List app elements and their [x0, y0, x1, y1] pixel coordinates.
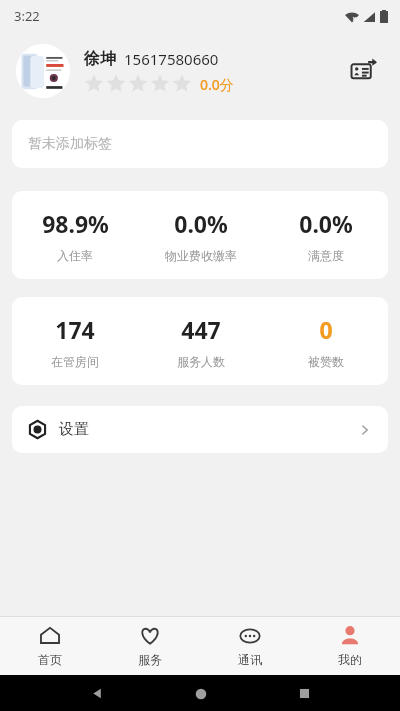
button[interactable]: 服务 [100, 617, 200, 675]
staticText: 服务人数 [177, 354, 225, 369]
staticText: 0.0分 [200, 75, 234, 94]
button[interactable]: 暂未添加标签 [12, 120, 388, 168]
staticText: 通讯 [238, 652, 262, 667]
staticText: 15617580660 [124, 49, 219, 69]
button[interactable]: 98.9% [12, 191, 138, 279]
staticText: 0 [319, 314, 333, 345]
staticText: 入住率 [57, 248, 93, 263]
staticText: 满意度 [308, 248, 344, 263]
button[interactable]: 0.0% [138, 191, 263, 279]
button[interactable]: 徐坤 [0, 32, 400, 110]
button[interactable]: 通讯 [200, 617, 300, 675]
staticText: 设置 [59, 420, 358, 439]
staticText: 0.0% [174, 208, 228, 239]
button[interactable]: 设置 [12, 406, 388, 453]
staticText: 我的 [338, 652, 362, 667]
button[interactable]: 447 [138, 297, 263, 385]
button[interactable]: 0 [263, 297, 388, 385]
staticText: 首页 [38, 652, 62, 667]
staticText: 0.0% [299, 208, 353, 239]
button[interactable]: 分享名片 [344, 51, 384, 91]
staticText: 被赞数 [308, 354, 344, 369]
staticText: 447 [181, 314, 221, 345]
staticText: 物业费收缴率 [165, 248, 237, 263]
button[interactable]: 我的 [300, 617, 400, 675]
staticText: 3:22 [14, 7, 40, 25]
button[interactable]: 首页 [0, 617, 100, 675]
staticText: 服务 [138, 652, 162, 667]
button[interactable]: 174 [12, 297, 138, 385]
button[interactable]: 0.0% [263, 191, 388, 279]
staticText: 徐坤 [84, 49, 116, 69]
staticText: 98.9% [42, 208, 109, 239]
staticText: 暂未添加标签 [28, 135, 112, 153]
staticText: 174 [55, 314, 95, 345]
staticText: 在管房间 [51, 354, 99, 369]
